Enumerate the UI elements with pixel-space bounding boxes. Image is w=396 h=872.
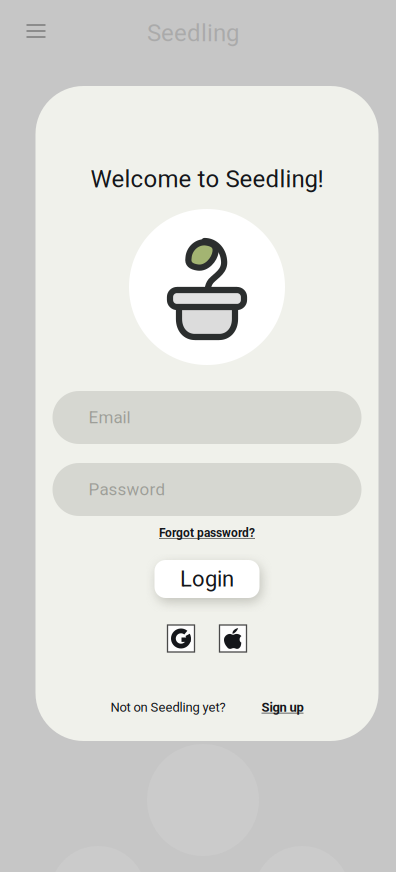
staticText: Login — [180, 566, 234, 592]
button[interactable]: Login — [154, 560, 259, 598]
button[interactable]: Sign in with Apple — [219, 625, 246, 652]
staticText: Not on Seedling yet? — [110, 700, 225, 715]
staticText: Sign up — [261, 700, 303, 715]
button[interactable]: Menu — [14, 9, 58, 53]
staticText: Email — [88, 407, 130, 427]
button[interactable]: Sign up — [261, 700, 303, 715]
staticText: Welcome to Seedling! — [90, 165, 323, 193]
staticText: Seedling — [147, 19, 239, 47]
staticText: Password — [88, 479, 165, 499]
button[interactable]: Sign in with Google — [167, 625, 194, 652]
staticText: Forgot password? — [159, 526, 255, 540]
button[interactable]: Forgot password? — [153, 523, 261, 543]
